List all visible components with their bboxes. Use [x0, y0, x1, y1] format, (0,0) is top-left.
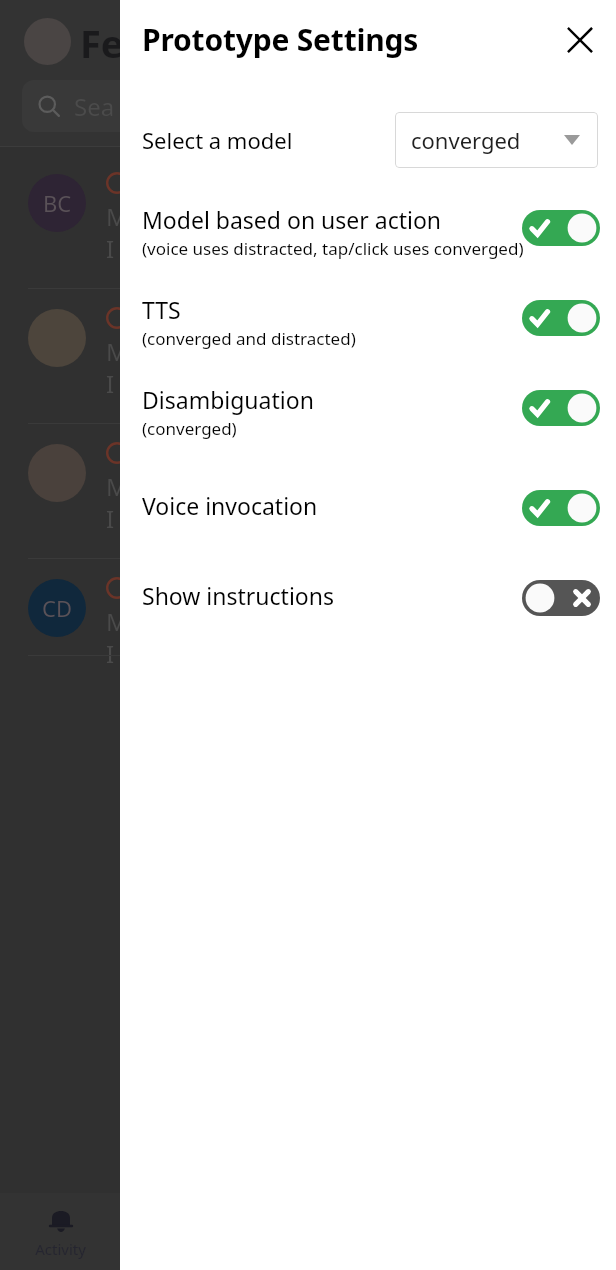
button[interactable]: Show instructions	[120, 570, 616, 628]
button[interactable]: On	[522, 490, 600, 526]
button[interactable]: Activity	[0, 1193, 120, 1270]
button[interactable]: On	[522, 390, 600, 426]
button[interactable]: TTS	[120, 290, 616, 364]
staticText: I	[106, 232, 115, 265]
staticText: BC	[43, 188, 72, 218]
button[interactable]: Model based on user action	[120, 200, 616, 274]
staticText: Voice invocation	[142, 490, 318, 521]
staticText: Show instructions	[142, 580, 334, 611]
staticText: M	[106, 470, 128, 503]
staticText: Fe	[80, 17, 124, 69]
staticText: (converged)	[142, 417, 237, 440]
button[interactable]: Close	[558, 18, 602, 62]
staticText: M	[106, 605, 128, 638]
button[interactable]: Voice invocation	[120, 480, 616, 538]
staticText: CD	[42, 593, 72, 623]
staticText: Select a model	[142, 125, 293, 155]
staticText: Disambiguation	[142, 384, 314, 415]
staticText: M	[106, 200, 128, 233]
staticText: I	[106, 637, 115, 670]
button[interactable]: Disambiguation	[120, 380, 616, 454]
staticText: Model based on user action	[142, 204, 442, 235]
staticText: (converged and distracted)	[142, 327, 356, 350]
button[interactable]: On	[522, 300, 600, 336]
staticText: TTS	[142, 294, 181, 325]
staticText: I	[106, 502, 115, 535]
button[interactable]: Off	[522, 580, 600, 616]
staticText: converged	[411, 125, 521, 155]
staticText: Prototype Settings	[142, 19, 419, 60]
staticText: M	[106, 335, 128, 368]
staticText: I	[106, 367, 115, 400]
button[interactable]: converged	[395, 112, 598, 168]
button[interactable]: On	[522, 210, 600, 246]
staticText: Activity	[35, 1239, 86, 1259]
staticText: Sea	[74, 90, 115, 123]
staticText: (voice uses distracted, tap/click uses c…	[142, 237, 524, 260]
